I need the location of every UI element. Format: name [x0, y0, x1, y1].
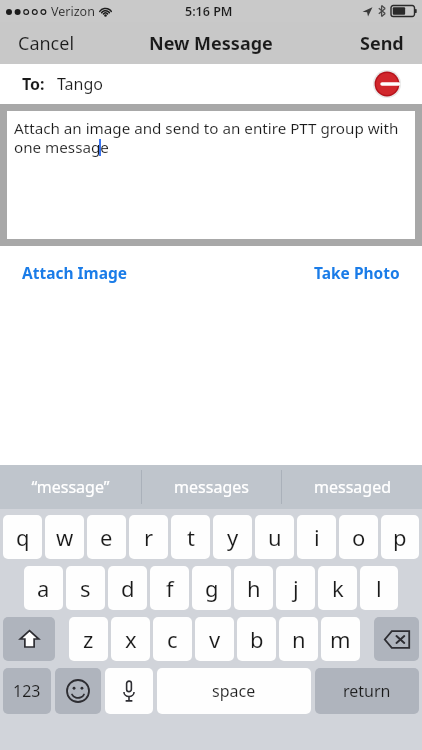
button[interactable]: e: [87, 515, 126, 559]
button[interactable]: r: [129, 515, 168, 559]
staticText: messages: [174, 476, 249, 498]
button[interactable]: g: [192, 566, 231, 610]
button[interactable]: m: [321, 617, 360, 661]
staticText: a: [37, 573, 50, 603]
button[interactable]: Emoji: [55, 668, 101, 714]
staticText: 123: [13, 680, 41, 702]
staticText: Cancel: [18, 31, 75, 56]
button[interactable]: j: [276, 566, 315, 610]
button[interactable]: s: [66, 566, 105, 610]
staticText: w: [56, 522, 74, 552]
staticText: New Message: [149, 31, 273, 56]
button[interactable]: p: [381, 515, 419, 559]
staticText: m: [330, 624, 351, 654]
button[interactable]: f: [150, 566, 189, 610]
staticText: f: [166, 573, 174, 603]
button[interactable]: messaged: [282, 465, 422, 509]
button[interactable]: y: [213, 515, 252, 559]
staticText: x: [125, 624, 137, 654]
staticText: y: [227, 522, 239, 552]
button[interactable]: messages: [142, 465, 281, 509]
button[interactable]: i: [297, 515, 336, 559]
staticText: space: [212, 680, 256, 702]
button[interactable]: “message”: [0, 465, 141, 509]
button[interactable]: Dictation: [105, 668, 153, 714]
staticText: j: [293, 573, 299, 603]
staticText: b: [250, 624, 264, 654]
staticText: Attach Image: [22, 262, 128, 283]
staticText: Attach an image and send to an entire PT…: [14, 118, 407, 157]
button[interactable]: h: [234, 566, 273, 610]
staticText: e: [100, 522, 113, 552]
staticText: g: [205, 573, 219, 603]
staticText: o: [352, 522, 366, 552]
staticText: c: [167, 624, 178, 654]
staticText: return: [343, 680, 391, 702]
button[interactable]: d: [108, 566, 147, 610]
button[interactable]: z: [69, 617, 108, 661]
staticText: Verizon: [51, 3, 95, 20]
staticText: l: [376, 573, 382, 603]
staticText: z: [83, 624, 94, 654]
button[interactable]: l: [360, 566, 398, 610]
button[interactable]: o: [339, 515, 378, 559]
button[interactable]: u: [255, 515, 294, 559]
button[interactable]: Backspace: [374, 617, 419, 661]
button[interactable]: Attach an image and send to an entire PT…: [7, 111, 415, 239]
button[interactable]: Attach Image: [0, 252, 138, 293]
staticText: 5:16 PM: [185, 3, 233, 20]
staticText: n: [292, 624, 306, 654]
button[interactable]: t: [171, 515, 210, 559]
staticText: Send: [360, 31, 404, 56]
staticText: q: [16, 522, 30, 552]
staticText: messaged: [314, 476, 391, 498]
button[interactable]: space: [157, 668, 311, 714]
button[interactable]: n: [279, 617, 318, 661]
button[interactable]: return: [315, 668, 419, 714]
button[interactable]: Cancel: [0, 23, 93, 64]
staticText: d: [121, 573, 135, 603]
button[interactable]: Take Photo: [304, 252, 422, 293]
staticText: r: [144, 522, 154, 552]
staticText: s: [80, 573, 91, 603]
staticText: p: [393, 522, 407, 552]
button[interactable]: Shift: [3, 617, 55, 661]
button[interactable]: q: [3, 515, 42, 559]
button[interactable]: c: [153, 617, 192, 661]
staticText: k: [332, 573, 344, 603]
staticText: To:: [22, 73, 45, 95]
button[interactable]: v: [195, 617, 234, 661]
button[interactable]: x: [111, 617, 150, 661]
button[interactable]: a: [24, 566, 63, 610]
staticText: Tango: [57, 73, 104, 95]
staticText: “message”: [31, 476, 110, 498]
button[interactable]: 123: [3, 668, 51, 714]
button[interactable]: Send: [342, 23, 422, 64]
staticText: h: [247, 573, 261, 603]
staticText: t: [187, 522, 195, 552]
staticText: u: [268, 522, 282, 552]
button[interactable]: w: [45, 515, 84, 559]
button[interactable]: Remove recipient: [373, 70, 401, 98]
button[interactable]: k: [318, 566, 357, 610]
button[interactable]: b: [237, 617, 276, 661]
staticText: i: [314, 522, 320, 552]
staticText: v: [209, 624, 221, 654]
staticText: Take Photo: [314, 262, 400, 283]
